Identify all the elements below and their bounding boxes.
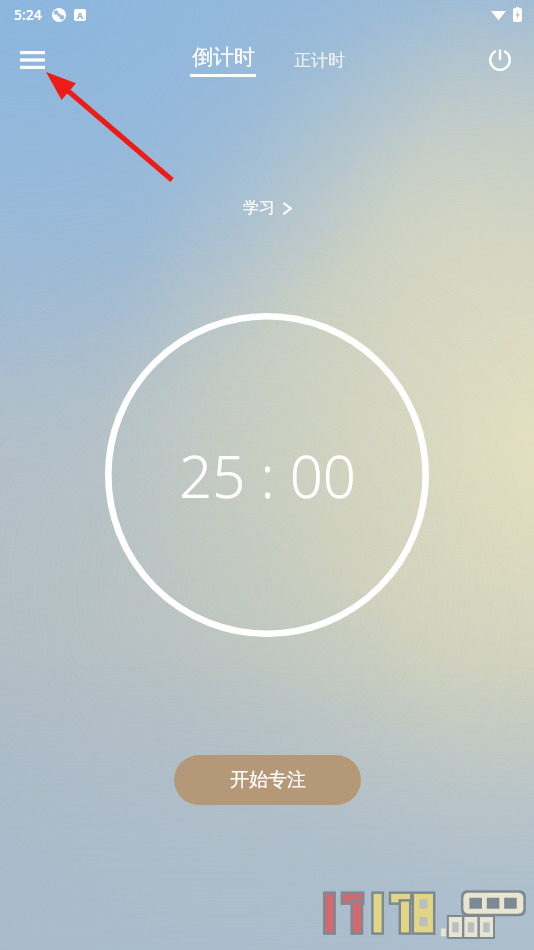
button[interactable]: 学习 — [229, 192, 306, 224]
staticText: 5:24 — [14, 5, 42, 24]
staticText: 正计时 — [294, 50, 345, 71]
staticText: A — [77, 9, 84, 21]
button[interactable]: 正计时 — [288, 46, 351, 75]
button[interactable]: 25 : 00 — [105, 313, 429, 637]
button[interactable]: 倒计时 — [184, 44, 262, 77]
button[interactable]: Power — [476, 36, 524, 84]
button[interactable]: Menu — [8, 36, 56, 84]
staticText: 倒计时 — [192, 44, 255, 70]
staticText: 开始专注 — [230, 768, 306, 792]
button[interactable]: 开始专注 — [174, 755, 361, 805]
staticText: 学习 — [243, 198, 275, 218]
staticText: 25 : 00 — [179, 436, 356, 515]
